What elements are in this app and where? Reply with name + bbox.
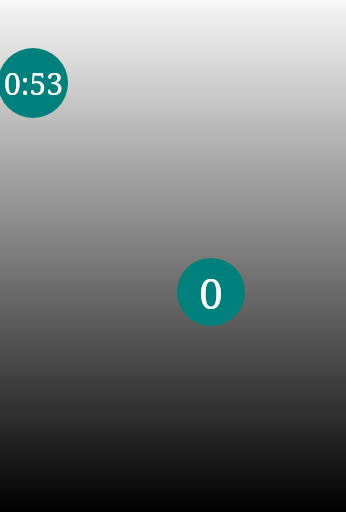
- staticText: 0:53: [4, 63, 63, 104]
- staticText: 0: [199, 264, 223, 321]
- button[interactable]: Timer 0:53: [0, 48, 68, 118]
- button[interactable]: Score 0: [177, 258, 245, 326]
